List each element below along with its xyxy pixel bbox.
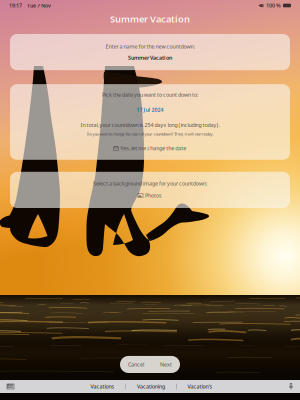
button[interactable]: 17 Jul 2024 — [132, 105, 167, 114]
staticText: Cancel — [128, 361, 144, 368]
staticText: Do you want to change the start of your … — [86, 131, 213, 137]
staticText: Summer Vacation — [110, 13, 190, 25]
staticText: Next — [160, 361, 172, 368]
staticText: Summer Vacation — [128, 54, 172, 61]
button[interactable]: Keyboard — [0, 381, 21, 392]
staticText: Select a background image for your count… — [93, 180, 207, 187]
staticText: Yes, let me change the date — [120, 145, 186, 152]
staticText: Photos — [145, 192, 162, 199]
staticText: 100 % — [266, 2, 281, 9]
staticText: 17 Jul 2024 — [136, 106, 163, 113]
staticText: Vacationing — [137, 383, 165, 390]
button[interactable]: Next — [152, 356, 180, 373]
button[interactable]: Vacation's — [177, 380, 224, 393]
staticText: Vacations — [90, 383, 114, 390]
button[interactable]: Cancel — [120, 356, 152, 373]
button[interactable]: Yes, let me change the date — [111, 144, 189, 153]
button[interactable]: Vacationing — [126, 380, 176, 393]
button[interactable]: Photos — [135, 191, 165, 200]
staticText: Enter a name for the new countdown: — [105, 43, 194, 50]
button[interactable]: Vacations — [79, 380, 125, 393]
button[interactable]: Dictation — [282, 381, 300, 391]
staticText: Vacation's — [188, 383, 213, 390]
staticText: 19:17 — [9, 2, 22, 9]
staticText: In total, your countdown is 254 days lon… — [80, 121, 219, 128]
staticText: Tue 7 Nov — [27, 2, 51, 9]
staticText: Pick the date you want to count down to: — [102, 91, 198, 98]
